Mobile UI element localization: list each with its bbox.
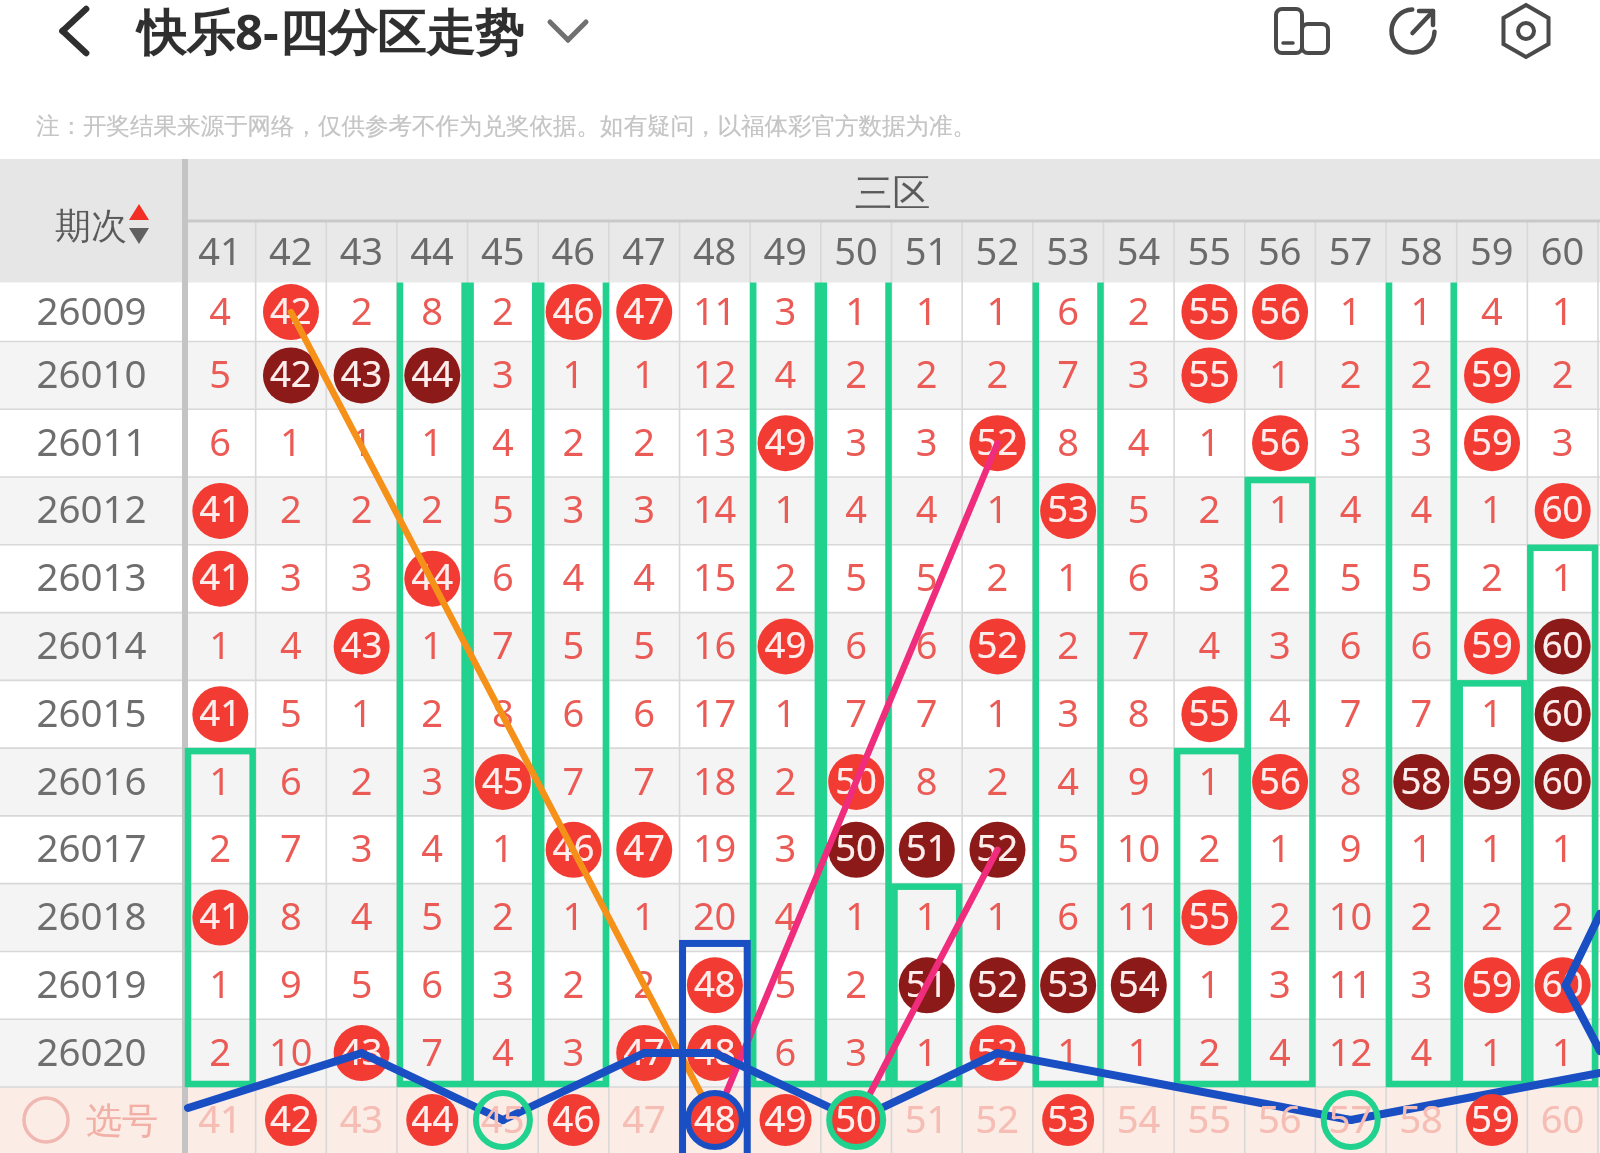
button[interactable] xyxy=(0,545,1600,613)
button[interactable] xyxy=(0,884,1600,952)
button[interactable] xyxy=(0,477,1600,545)
button[interactable]: Share xyxy=(1383,0,1445,62)
button[interactable]: Split screen xyxy=(1271,0,1333,62)
button[interactable] xyxy=(0,748,1600,816)
button[interactable]: Settings xyxy=(1496,0,1558,62)
button[interactable]: 选号 xyxy=(0,1087,1600,1153)
button[interactable] xyxy=(0,613,1600,681)
button[interactable] xyxy=(0,342,1600,410)
button[interactable]: 期次 排序 xyxy=(0,159,185,283)
button[interactable]: Back xyxy=(42,0,106,64)
button[interactable] xyxy=(0,680,1600,748)
button[interactable] xyxy=(0,816,1600,884)
button[interactable] xyxy=(128,0,598,64)
button[interactable] xyxy=(0,283,1600,342)
button[interactable] xyxy=(0,1019,1600,1087)
button[interactable] xyxy=(0,409,1600,477)
button[interactable] xyxy=(0,951,1600,1019)
